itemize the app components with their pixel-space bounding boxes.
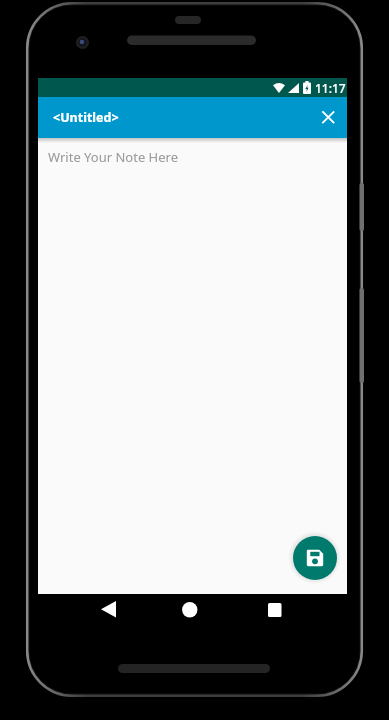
staticText: <Untitled> bbox=[53, 109, 119, 126]
button[interactable] bbox=[92, 597, 125, 622]
button[interactable] bbox=[310, 97, 347, 138]
staticText: Write Your Note Here bbox=[48, 148, 179, 166]
staticText: 11:17 bbox=[315, 80, 346, 96]
button[interactable] bbox=[175, 597, 205, 622]
button[interactable] bbox=[293, 536, 337, 580]
button[interactable] bbox=[260, 597, 290, 622]
